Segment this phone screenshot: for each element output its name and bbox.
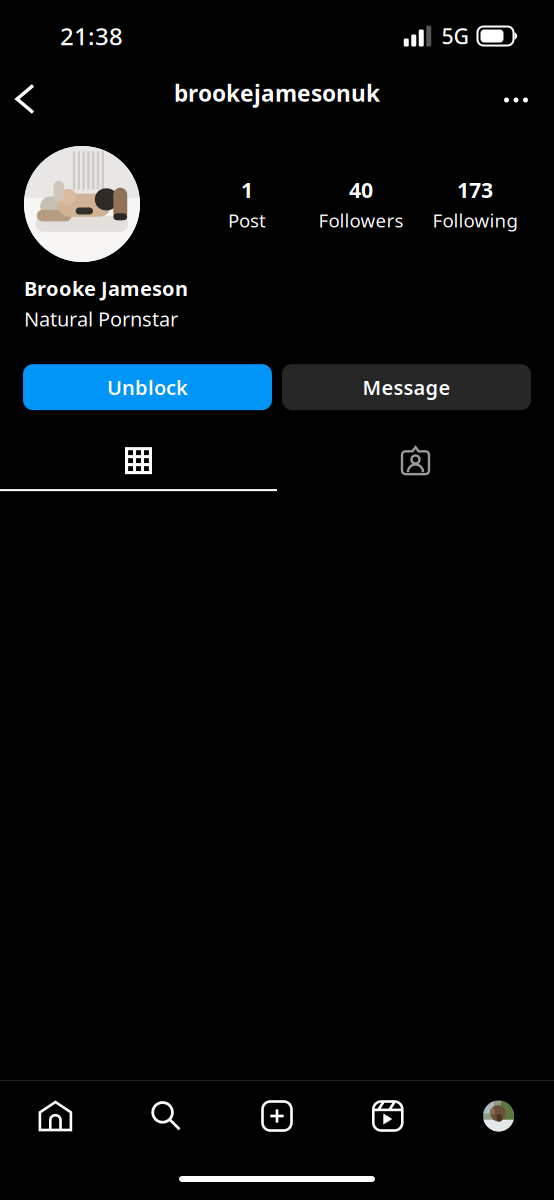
staticText: 5G <box>441 22 469 50</box>
staticText: Natural Pornstar <box>24 306 178 332</box>
button[interactable]: Home <box>0 1081 111 1151</box>
button[interactable]: More options <box>486 73 554 123</box>
button[interactable]: Search <box>111 1081 222 1151</box>
staticText: Brooke Jameson <box>24 275 188 302</box>
button[interactable]: Tagged photos <box>277 428 554 491</box>
button[interactable]: Your profile <box>443 1081 554 1151</box>
staticText: Post <box>228 208 266 233</box>
staticText: 40 <box>349 175 373 204</box>
staticText: 21:38 <box>60 20 123 52</box>
staticText: Following <box>432 208 517 233</box>
staticText: brookejamesonuk <box>174 78 380 108</box>
button[interactable]: Unblock <box>23 364 272 410</box>
button[interactable]: Back <box>0 73 51 122</box>
button[interactable]: Posts grid <box>0 428 277 491</box>
staticText: Unblock <box>107 374 188 400</box>
button[interactable]: Create new post <box>222 1081 332 1151</box>
button[interactable]: Reels <box>332 1081 443 1151</box>
button[interactable]: Message <box>282 364 531 410</box>
staticText: 1 <box>241 175 253 204</box>
staticText: Followers <box>318 208 403 233</box>
staticText: 173 <box>457 175 493 204</box>
staticText: Message <box>362 374 450 400</box>
